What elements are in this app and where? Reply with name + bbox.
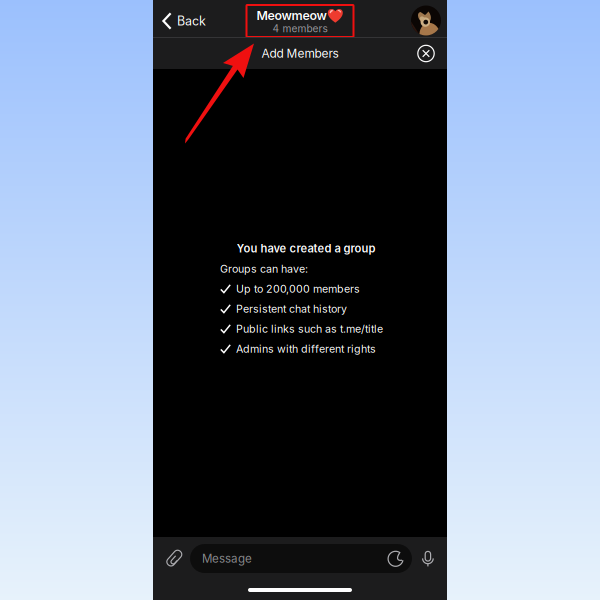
button[interactable]: Add Members bbox=[153, 38, 447, 69]
staticText: Admins with different rights bbox=[236, 342, 376, 355]
staticText: You have created a group bbox=[236, 242, 375, 255]
staticText: 4 members bbox=[272, 22, 327, 35]
button[interactable]: Attach bbox=[153, 549, 190, 568]
staticText: Persistent chat history bbox=[236, 302, 347, 315]
staticText: Message bbox=[202, 551, 252, 565]
staticText: Meowmeow bbox=[256, 8, 326, 23]
button[interactable]: Dismiss bbox=[417, 38, 447, 69]
staticText: Back bbox=[177, 13, 206, 29]
staticText: Add Members bbox=[261, 46, 338, 61]
button[interactable]: Stickers bbox=[387, 550, 412, 567]
staticText: Up to 200,000 members bbox=[236, 282, 360, 295]
button[interactable]: Record voice message bbox=[412, 550, 447, 567]
button[interactable]: Back bbox=[153, 0, 214, 37]
button[interactable]: Group photo bbox=[411, 3, 447, 33]
staticText: Groups can have: bbox=[220, 262, 308, 275]
staticText: Public links such as t.me/title bbox=[236, 322, 383, 335]
button[interactable]: Meowmeow bbox=[246, 5, 353, 37]
